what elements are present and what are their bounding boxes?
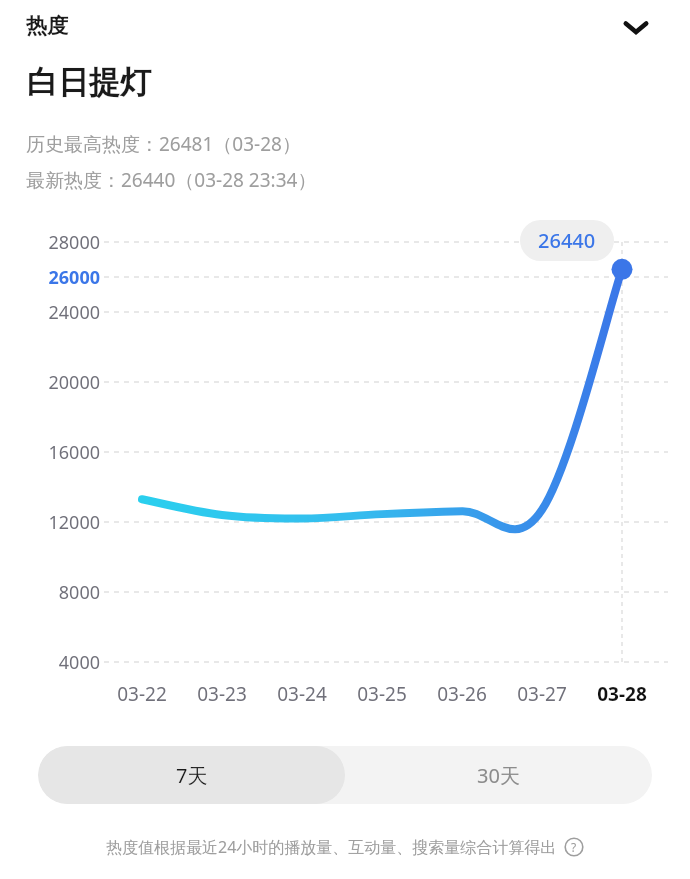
staticText: 热度值根据最近24小时的播放量、互动量、搜索量综合计算得出 <box>106 836 557 858</box>
staticText: 03-27 <box>497 681 587 707</box>
button[interactable]: Help <box>564 837 584 857</box>
staticText: 03-26 <box>417 681 507 707</box>
staticText: 白日提灯 <box>27 63 151 102</box>
staticText: 03-23 <box>177 681 267 707</box>
staticText: 26440 <box>538 227 596 254</box>
staticText: 26000 <box>6 265 100 290</box>
staticText: 24000 <box>6 300 100 325</box>
staticText: 03-24 <box>257 681 347 707</box>
button[interactable]: 7天 <box>38 746 345 804</box>
staticText: 03-22 <box>97 681 187 707</box>
staticText: 30天 <box>477 762 520 789</box>
staticText: 4000 <box>6 650 100 675</box>
staticText: 最新热度：26440（03-28 23:34） <box>26 167 317 193</box>
staticText: 28000 <box>6 230 100 255</box>
staticText: ? <box>571 839 577 855</box>
staticText: 历史最高热度：26481（03-28） <box>26 131 301 157</box>
staticText: 03-25 <box>337 681 427 707</box>
staticText: 16000 <box>6 440 100 465</box>
staticText: 7天 <box>176 762 208 789</box>
staticText: 热度 <box>26 13 68 39</box>
button[interactable]: Collapse <box>610 1 662 53</box>
staticText: 20000 <box>6 370 100 395</box>
staticText: 12000 <box>6 510 100 535</box>
button[interactable]: 30天 <box>345 746 652 804</box>
staticText: 03-28 <box>577 681 667 707</box>
staticText: 8000 <box>6 580 100 605</box>
